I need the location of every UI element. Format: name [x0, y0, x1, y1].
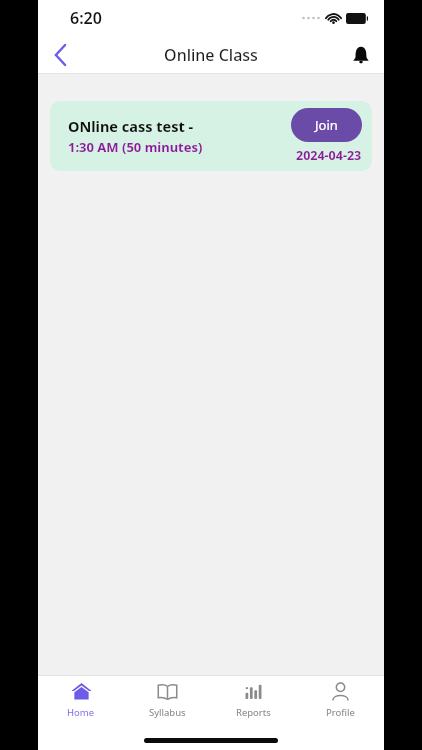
- button[interactable]: Notifications: [338, 36, 384, 74]
- staticText: Syllabus: [149, 706, 186, 719]
- button[interactable]: Syllabus: [124, 676, 210, 724]
- button[interactable]: Profile: [297, 676, 384, 724]
- staticText: 2024-04-23: [296, 147, 362, 164]
- button[interactable]: Back: [38, 36, 82, 74]
- staticText: ONline cass test -: [68, 116, 194, 136]
- staticText: Profile: [326, 706, 355, 719]
- staticText: Reports: [236, 706, 271, 719]
- button[interactable]: Home: [38, 676, 124, 724]
- button[interactable]: Reports: [210, 676, 297, 724]
- staticText: Join: [315, 116, 338, 134]
- button[interactable]: ONline cass test -: [50, 101, 372, 171]
- staticText: Online Class: [164, 44, 258, 66]
- staticText: 1:30 AM (50 minutes): [68, 138, 203, 156]
- staticText: Home: [67, 706, 95, 719]
- button[interactable]: Join: [291, 108, 362, 142]
- staticText: 6:20: [70, 7, 102, 29]
